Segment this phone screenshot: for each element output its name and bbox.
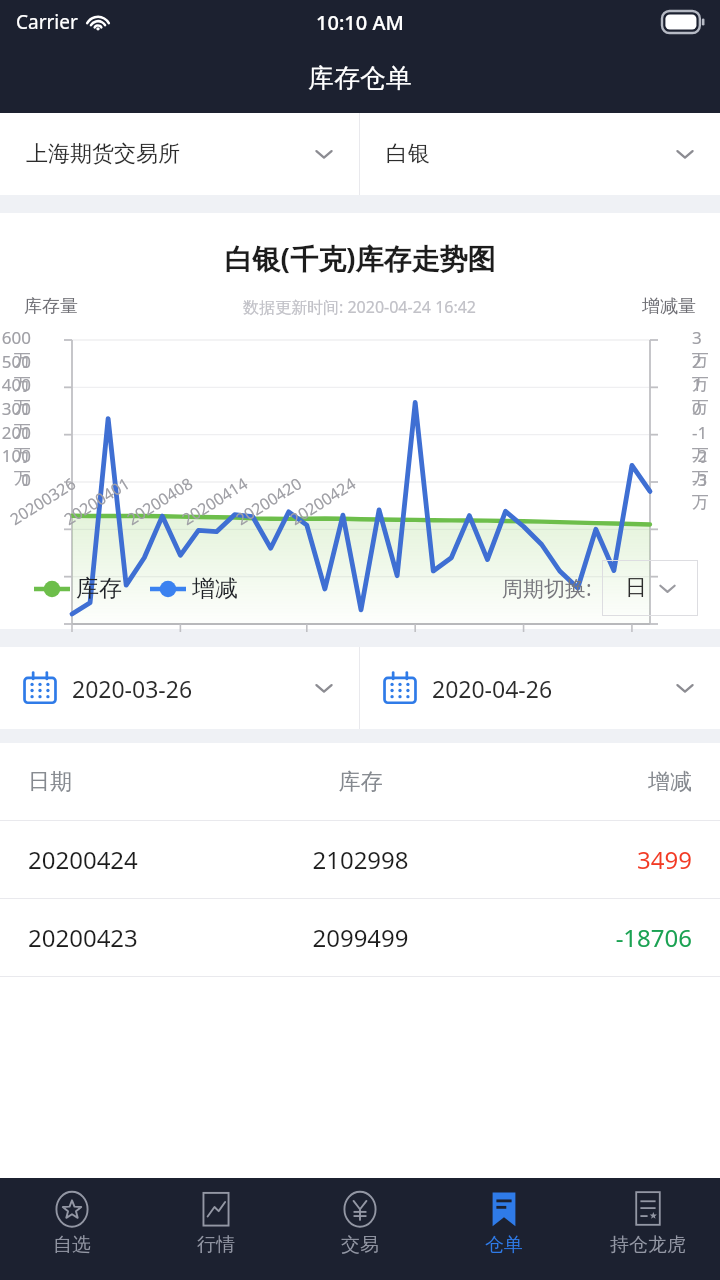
button[interactable]: 自选 <box>0 1178 144 1280</box>
staticText: 10:10 AM <box>316 9 404 36</box>
staticText: 增减 <box>192 574 238 603</box>
staticText: 行情 <box>197 1233 235 1257</box>
staticText: 日期 <box>28 768 250 796</box>
staticText: 500万 <box>1 350 31 395</box>
button[interactable]: 20200424 <box>0 821 720 898</box>
staticText: 增减 <box>471 768 692 796</box>
staticText: -3万 <box>692 468 718 513</box>
staticText: 20200423 <box>28 921 250 954</box>
staticText: 20200424 <box>28 843 250 876</box>
other: Pick date <box>22 670 58 706</box>
staticText: 库存 <box>76 574 122 603</box>
staticText: 增减量 <box>642 295 696 318</box>
button[interactable]: 持仓龙虎 <box>576 1178 720 1280</box>
staticText: 300万 <box>1 397 31 442</box>
staticText: 持仓龙虎 <box>610 1233 686 1257</box>
staticText: 2102998 <box>250 843 471 876</box>
staticText: 2020-04-26 <box>432 673 553 704</box>
button[interactable]: 白银 <box>360 113 720 195</box>
button[interactable]: 库存 <box>34 574 122 603</box>
staticText: 白银(千克)库存走势图 <box>0 239 720 277</box>
staticText: 20200414 <box>178 472 252 530</box>
staticText: 3万 <box>692 326 718 371</box>
staticText: 仓单 <box>485 1233 523 1257</box>
staticText: 交易 <box>341 1233 379 1257</box>
staticText: 库存 <box>250 768 471 796</box>
staticText: 周期切换: <box>502 574 592 603</box>
staticText: 20200424 <box>286 472 360 530</box>
staticText: 白银 <box>386 140 430 168</box>
button[interactable]: 行情 <box>144 1178 288 1280</box>
staticText: -2万 <box>692 444 718 489</box>
staticText: 600万 <box>1 326 31 371</box>
staticText: 2099499 <box>250 921 471 954</box>
staticText: 0 <box>1 468 31 491</box>
staticText: 上海期货交易所 <box>26 140 180 168</box>
button[interactable]: 20200423 <box>0 899 720 976</box>
staticText: 3499 <box>471 843 692 876</box>
button[interactable]: 交易 <box>288 1178 432 1280</box>
staticText: 100万 <box>1 444 31 489</box>
button[interactable]: Pick date <box>0 647 359 729</box>
staticText: 20200401 <box>60 472 134 530</box>
staticText: Carrier <box>16 9 78 35</box>
staticText: 2万 <box>692 350 718 395</box>
staticText: 库存量 <box>24 295 78 318</box>
staticText: 20200326 <box>6 472 80 530</box>
staticText: 2020-03-26 <box>72 673 193 704</box>
staticText: 1万 <box>692 373 718 418</box>
button[interactable]: 仓单 <box>432 1178 576 1280</box>
staticText: 400万 <box>1 373 31 418</box>
staticText: 数据更新时间: 2020-04-24 16:42 <box>243 296 477 318</box>
staticText: 库存仓单 <box>308 62 412 95</box>
other: Pick date <box>382 670 418 706</box>
staticText: 日 <box>625 574 647 602</box>
button[interactable]: Pick date <box>360 647 720 729</box>
button[interactable]: 上海期货交易所 <box>0 113 359 195</box>
button[interactable]: 日 <box>602 560 698 616</box>
staticText: 0 <box>692 397 718 420</box>
staticText: -18706 <box>471 921 692 954</box>
staticText: 200万 <box>1 421 31 466</box>
button[interactable]: 增减 <box>150 574 238 603</box>
staticText: 20200408 <box>123 472 197 530</box>
staticText: -1万 <box>692 421 718 466</box>
staticText: 20200420 <box>232 472 306 530</box>
staticText: 自选 <box>53 1233 91 1257</box>
